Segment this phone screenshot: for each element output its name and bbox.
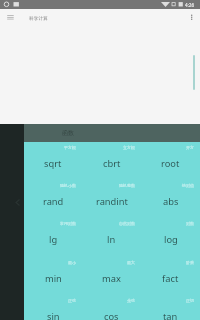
button[interactable]: 平方根 [24, 142, 82, 180]
staticText: 常用对数 [60, 221, 76, 226]
button[interactable]: 最小 [24, 257, 82, 295]
staticText: max [102, 272, 121, 285]
staticText: 阶乘 [186, 260, 194, 265]
button[interactable]: Navigation menu [0, 9, 17, 26]
button[interactable]: 随机整数 [82, 180, 141, 218]
staticText: 自然对数 [119, 221, 135, 226]
button[interactable]: 正切 [141, 295, 200, 320]
staticText: cos [104, 310, 119, 320]
staticText: 最大 [127, 260, 135, 265]
staticText: cbrt [103, 157, 121, 170]
staticText: 科学计算 [29, 15, 48, 21]
button[interactable]: 阶乘 [141, 257, 200, 295]
staticText: 随机小数 [60, 183, 76, 188]
staticText: 随机整数 [119, 183, 135, 188]
button[interactable]: 最大 [82, 257, 141, 295]
staticText: 立方根 [123, 145, 135, 150]
staticText: 4:26 [185, 2, 195, 8]
staticText: 正切 [186, 298, 194, 303]
staticText: rand [43, 195, 64, 208]
button[interactable]: 对数 [141, 218, 200, 256]
staticText: 最小 [68, 260, 76, 265]
staticText: log [164, 233, 178, 246]
button[interactable]: More options [183, 9, 200, 26]
staticText: 正弦 [68, 298, 76, 303]
staticText: abs [163, 195, 179, 208]
button[interactable]: 立方根 [82, 142, 141, 180]
staticText: 平方根 [64, 145, 76, 150]
staticText: fact [162, 272, 179, 285]
staticText: root [161, 157, 180, 170]
staticText: sqrt [44, 157, 62, 170]
staticText: min [45, 272, 62, 285]
staticText: 对数 [186, 221, 194, 226]
button[interactable]: 绝对值 [141, 180, 200, 218]
staticText: ln [107, 233, 116, 246]
button[interactable]: 余弦 [82, 295, 141, 320]
button[interactable]: 开方 [141, 142, 200, 180]
button[interactable]: 常用对数 [24, 218, 82, 256]
button[interactable]: 随机小数 [24, 180, 82, 218]
staticText: randint [96, 195, 128, 208]
staticText: sin [47, 310, 60, 320]
staticText: 开方 [186, 145, 194, 150]
staticText: tan [163, 310, 178, 320]
staticText: 函数 [62, 129, 74, 137]
button[interactable]: 正弦 [24, 295, 82, 320]
staticText: lg [49, 233, 58, 246]
staticText: 余弦 [127, 298, 135, 303]
button[interactable]: 自然对数 [82, 218, 141, 256]
staticText: 绝对值 [182, 183, 194, 188]
